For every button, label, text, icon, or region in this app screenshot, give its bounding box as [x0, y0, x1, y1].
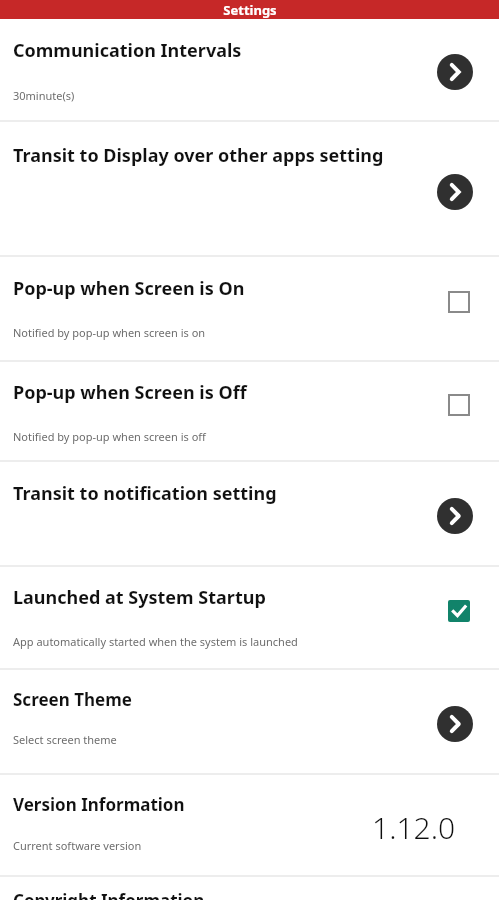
button[interactable]: Transit to notification setting: [0, 462, 499, 565]
staticText: Launched at System Startup: [13, 585, 266, 610]
button[interactable]: Screen Theme: [437, 706, 473, 742]
button[interactable]: Launched at System Startup: [447, 599, 471, 623]
staticText: App automatically started when the syste…: [13, 634, 298, 649]
staticText: Screen Theme: [13, 688, 132, 711]
staticText: Transit to Display over other apps setti…: [13, 143, 384, 168]
button[interactable]: Communication Intervals: [0, 19, 499, 120]
staticText: Settings: [223, 1, 277, 19]
button[interactable]: Communication Intervals: [437, 54, 473, 90]
staticText: 1.12.0: [372, 807, 456, 848]
staticText: Communication Intervals: [13, 38, 242, 63]
button[interactable]: Screen Theme: [0, 670, 499, 773]
staticText: Copyright Information: [13, 889, 205, 900]
button[interactable]: Launched at System Startup: [0, 567, 499, 668]
button[interactable]: Pop-up when Screen is On: [447, 290, 471, 314]
staticText: Version Information: [13, 793, 185, 816]
staticText: Notified by pop-up when screen is off: [13, 429, 206, 444]
button[interactable]: Transit to Display over other apps setti…: [0, 122, 499, 255]
staticText: Pop-up when Screen is Off: [13, 380, 247, 405]
staticText: Notified by pop-up when screen is on: [13, 325, 206, 340]
staticText: Select screen theme: [13, 732, 117, 747]
button[interactable]: Copyright Information: [0, 877, 499, 900]
button[interactable]: Pop-up when Screen is On: [0, 257, 499, 360]
button[interactable]: Transit to Display over other apps setti…: [437, 174, 473, 210]
button[interactable]: Pop-up when Screen is Off: [0, 362, 499, 460]
staticText: Transit to notification setting: [13, 481, 277, 506]
staticText: Current software version: [13, 838, 142, 853]
button[interactable]: Version Information: [0, 775, 499, 875]
button[interactable]: Transit to notification setting: [437, 498, 473, 534]
button[interactable]: Pop-up when Screen is Off: [447, 393, 471, 417]
staticText: Pop-up when Screen is On: [13, 276, 245, 301]
staticText: 30minute(s): [13, 88, 75, 103]
